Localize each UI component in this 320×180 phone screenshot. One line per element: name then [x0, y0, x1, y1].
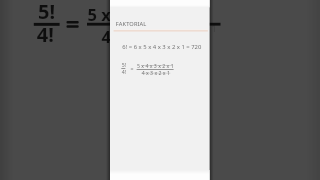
button[interactable]: [110, 14, 210, 32]
button[interactable]: Factorial worked example: [110, 32, 210, 82]
button[interactable]: Next: [210, 0, 320, 180]
button[interactable]: Previous: [0, 0, 110, 180]
